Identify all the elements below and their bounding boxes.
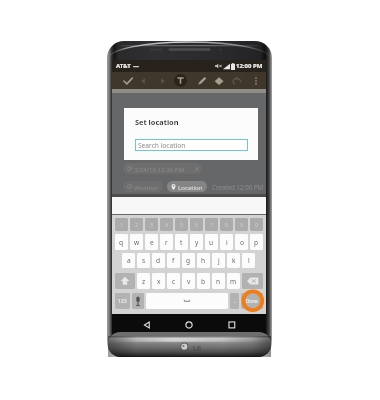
staticText: LG <box>193 344 202 353</box>
button[interactable]: 8 <box>220 218 233 231</box>
staticText: 4 <box>165 221 168 228</box>
staticText: b <box>201 277 206 286</box>
staticText: 9 <box>240 221 243 228</box>
staticText: j <box>218 256 220 265</box>
staticText: n <box>216 277 221 286</box>
button[interactable]: m <box>227 273 240 289</box>
button[interactable]: Pen <box>196 75 208 87</box>
button[interactable]: Done <box>241 293 263 309</box>
staticText: 1 <box>120 221 123 228</box>
button[interactable]: z <box>137 273 150 289</box>
staticText: Location <box>178 183 203 191</box>
button[interactable]: r <box>160 234 173 250</box>
staticText: a <box>127 256 131 265</box>
button[interactable]: 5 <box>175 218 188 231</box>
staticText: Search location <box>138 141 186 150</box>
button[interactable]: n <box>212 273 225 289</box>
button[interactable]: More options <box>250 75 262 87</box>
button[interactable]: f <box>167 253 180 268</box>
button[interactable]: Voice input <box>132 293 144 309</box>
staticText: t <box>180 238 183 247</box>
staticText: w <box>134 238 140 247</box>
staticText: d <box>156 256 161 265</box>
button[interactable]: 9 <box>235 218 248 231</box>
staticText: u <box>209 238 214 247</box>
button[interactable]: i <box>220 234 233 250</box>
button[interactable]: q <box>115 234 128 250</box>
button[interactable]: p <box>250 234 263 250</box>
staticText: l <box>248 256 250 265</box>
button[interactable]: Search location <box>135 139 248 151</box>
button[interactable]: Weather <box>123 181 163 192</box>
button[interactable]: 3 <box>145 218 158 231</box>
staticText: 123 <box>118 298 127 305</box>
staticText: 3/24/16 12:30 PM <box>134 165 184 173</box>
button[interactable]: Text tool <box>174 74 187 87</box>
staticText: Done <box>246 298 258 304</box>
button[interactable]: Fill colour <box>213 75 225 87</box>
button[interactable]: g <box>182 253 195 268</box>
staticText: 6 <box>195 221 198 228</box>
staticText: Set location <box>135 117 179 127</box>
button[interactable]: . <box>230 293 239 309</box>
staticText: e <box>150 238 154 247</box>
staticText: y <box>195 238 199 247</box>
staticText: AT&T <box>116 62 131 70</box>
staticText: . <box>234 297 236 305</box>
button[interactable]: u <box>205 234 218 250</box>
button[interactable]: l <box>242 253 255 268</box>
button[interactable]: j <box>212 253 225 268</box>
staticText: o <box>240 238 244 247</box>
button[interactable]: y <box>190 234 203 250</box>
button[interactable]: Home <box>181 317 197 333</box>
staticText: r <box>165 238 168 247</box>
button[interactable]: Next <box>156 75 168 87</box>
button[interactable]: Accept <box>122 75 134 87</box>
staticText: Weather <box>134 183 159 191</box>
button[interactable]: b <box>197 273 210 289</box>
staticText: c <box>172 277 176 286</box>
button[interactable]: e <box>145 234 158 250</box>
button[interactable]: Space <box>146 293 228 309</box>
staticText: p <box>254 238 259 247</box>
button[interactable]: o <box>235 234 248 250</box>
button[interactable]: 0 <box>250 218 263 231</box>
staticText: 5 <box>180 221 183 228</box>
button[interactable]: w <box>130 234 143 250</box>
button[interactable]: 6 <box>190 218 203 231</box>
button[interactable]: t <box>175 234 188 250</box>
staticText: g <box>186 256 191 265</box>
button[interactable]: 7 <box>205 218 218 231</box>
button[interactable]: 1 <box>115 218 128 231</box>
staticText: v <box>187 277 191 286</box>
button[interactable]: 3/24/16 12:30 PM <box>123 163 202 174</box>
button[interactable]: Shift <box>115 273 135 289</box>
button[interactable]: k <box>227 253 240 268</box>
button[interactable]: Backspace <box>242 273 263 289</box>
button[interactable]: v <box>182 273 195 289</box>
staticText: Created 12:00 PM <box>212 183 264 191</box>
button[interactable]: Previous <box>138 75 150 87</box>
staticText: 0 <box>255 221 258 228</box>
button[interactable]: a <box>122 253 135 268</box>
button[interactable]: Location <box>167 181 207 192</box>
staticText: z <box>142 277 146 286</box>
staticText: i <box>226 238 228 247</box>
staticText: 12:00 PM <box>236 62 263 70</box>
button[interactable]: Back <box>139 317 155 333</box>
button[interactable]: x <box>152 273 165 289</box>
staticText: 3 <box>150 221 153 228</box>
staticText: 8 <box>225 221 228 228</box>
button[interactable]: h <box>197 253 210 268</box>
staticText: k <box>232 256 236 265</box>
button[interactable]: Undo <box>231 75 243 87</box>
staticText: s <box>142 256 146 265</box>
button[interactable]: 4 <box>160 218 173 231</box>
button[interactable]: s <box>137 253 150 268</box>
button[interactable]: d <box>152 253 165 268</box>
button[interactable]: 2 <box>130 218 143 231</box>
staticText: h <box>201 256 206 265</box>
button[interactable]: 123 <box>115 293 130 309</box>
button[interactable]: Recent apps <box>224 317 240 333</box>
button[interactable]: c <box>167 273 180 289</box>
